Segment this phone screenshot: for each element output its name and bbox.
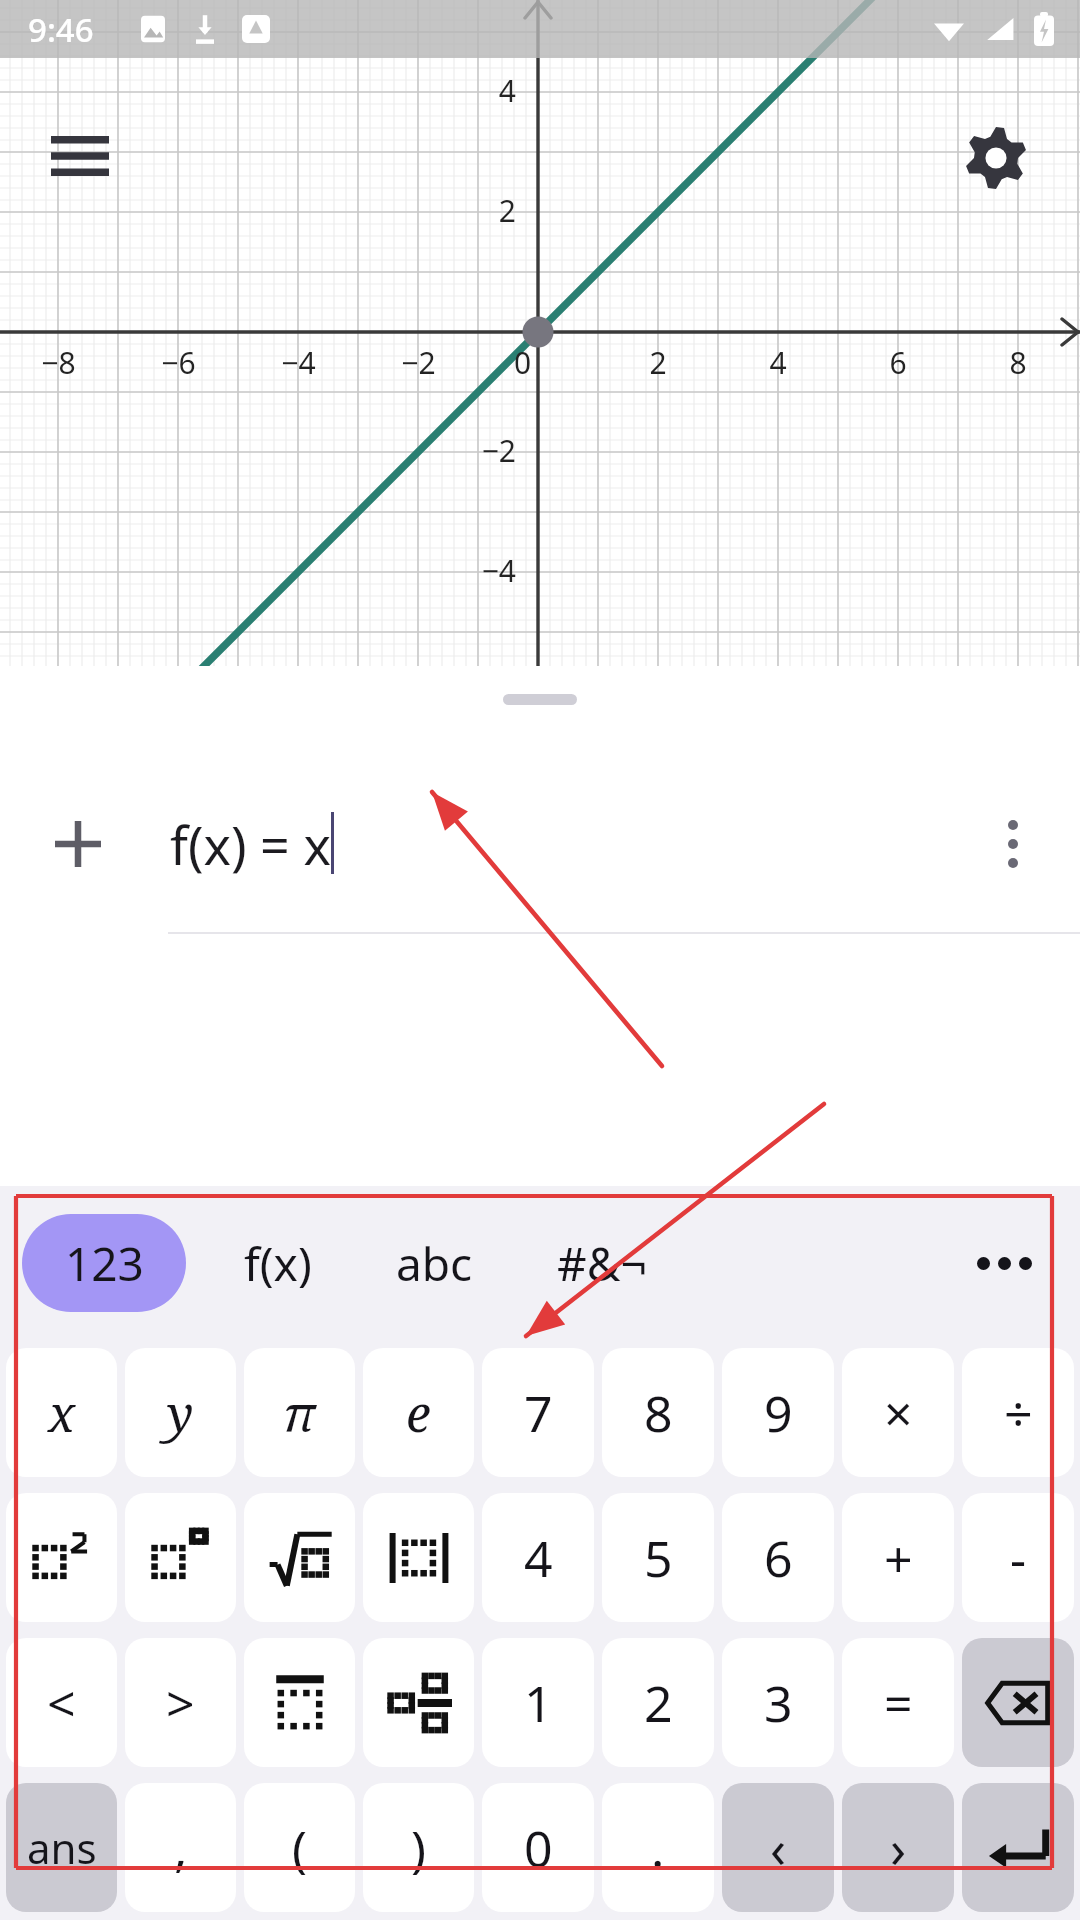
- staticText: ÷: [1004, 1379, 1033, 1447]
- staticText: 4: [769, 342, 787, 383]
- button[interactable]: 1: [482, 1638, 594, 1767]
- button[interactable]: 123: [22, 1214, 186, 1312]
- button[interactable]: #&¬: [516, 1214, 688, 1312]
- button[interactable]: 6: [722, 1493, 834, 1622]
- staticText: ›: [890, 1812, 907, 1883]
- staticText: π: [283, 1379, 316, 1447]
- button[interactable]: ×: [842, 1348, 954, 1477]
- staticText: 2: [498, 190, 516, 231]
- button[interactable]: f(x) = x: [170, 809, 334, 880]
- staticText: −8: [41, 342, 76, 383]
- staticText: abc: [396, 1232, 473, 1295]
- staticText: ): [411, 1814, 426, 1882]
- staticText: ×: [884, 1379, 913, 1447]
- staticText: 4: [498, 70, 516, 111]
- button[interactable]: f(x): [202, 1214, 354, 1312]
- staticText: +: [884, 1524, 913, 1592]
- staticText: −4: [481, 550, 516, 591]
- staticText: <: [47, 1669, 76, 1737]
- button[interactable]: [125, 1493, 236, 1622]
- staticText: 1: [524, 1669, 553, 1737]
- button[interactable]: More options: [968, 799, 1058, 889]
- staticText: ans: [27, 1819, 97, 1876]
- staticText: −6: [161, 342, 196, 383]
- button[interactable]: ÷: [962, 1348, 1074, 1477]
- button[interactable]: .: [602, 1783, 714, 1912]
- staticText: 8: [644, 1379, 673, 1447]
- button[interactable]: [363, 1493, 474, 1622]
- button[interactable]: 2: [602, 1638, 714, 1767]
- staticText: −2: [401, 342, 436, 383]
- button[interactable]: 8: [602, 1348, 714, 1477]
- button[interactable]: y: [125, 1348, 236, 1477]
- staticText: 3: [764, 1669, 793, 1737]
- staticText: x: [48, 1379, 76, 1447]
- button[interactable]: ans: [6, 1783, 117, 1912]
- staticText: 8: [1009, 342, 1027, 383]
- staticText: 2: [644, 1669, 673, 1737]
- button[interactable]: [6, 1493, 117, 1622]
- staticText: e: [406, 1379, 431, 1447]
- staticText: −4: [281, 342, 316, 383]
- staticText: f(x): [244, 1232, 312, 1295]
- staticText: 0: [514, 342, 532, 383]
- staticText: -: [1010, 1524, 1027, 1592]
- button[interactable]: Settings: [950, 112, 1042, 204]
- button[interactable]: ‹: [722, 1783, 834, 1912]
- staticText: 9: [764, 1379, 793, 1447]
- button[interactable]: More keyboard options: [956, 1215, 1052, 1311]
- staticText: 5: [644, 1524, 673, 1592]
- staticText: ‹: [770, 1812, 787, 1883]
- staticText: 4: [524, 1524, 553, 1592]
- button[interactable]: ›: [842, 1783, 954, 1912]
- button[interactable]: =: [842, 1638, 954, 1767]
- button[interactable]: e: [363, 1348, 474, 1477]
- button[interactable]: [363, 1638, 474, 1767]
- staticText: 6: [764, 1524, 793, 1592]
- staticText: −2: [481, 430, 516, 471]
- button[interactable]: π: [244, 1348, 355, 1477]
- button[interactable]: Menu: [40, 118, 120, 193]
- button[interactable]: >: [125, 1638, 236, 1767]
- staticText: y: [167, 1379, 194, 1447]
- button[interactable]: 5: [602, 1493, 714, 1622]
- button[interactable]: Add expression: [32, 798, 124, 890]
- button[interactable]: 0: [482, 1783, 594, 1912]
- staticText: 2: [649, 342, 667, 383]
- button[interactable]: +: [842, 1493, 954, 1622]
- staticText: #&¬: [557, 1232, 647, 1295]
- button[interactable]: abc: [354, 1214, 514, 1312]
- button[interactable]: x: [6, 1348, 117, 1477]
- staticText: ,: [174, 1814, 188, 1882]
- button[interactable]: 9: [722, 1348, 834, 1477]
- staticText: 7: [524, 1379, 553, 1447]
- button[interactable]: ,: [125, 1783, 236, 1912]
- staticText: 9:46: [28, 7, 94, 52]
- button[interactable]: Enter: [962, 1783, 1074, 1912]
- button[interactable]: (: [244, 1783, 355, 1912]
- staticText: .: [651, 1814, 665, 1882]
- button[interactable]: 3: [722, 1638, 834, 1767]
- button[interactable]: Backspace: [962, 1638, 1074, 1767]
- staticText: 6: [889, 342, 907, 383]
- button[interactable]: 7: [482, 1348, 594, 1477]
- staticText: >: [166, 1669, 195, 1737]
- staticText: f(x) = x: [170, 809, 331, 880]
- button[interactable]: 4: [482, 1493, 594, 1622]
- staticText: 123: [65, 1232, 144, 1295]
- staticText: =: [884, 1669, 913, 1737]
- button[interactable]: <: [6, 1638, 117, 1767]
- staticText: 0: [524, 1814, 553, 1882]
- button[interactable]: ): [363, 1783, 474, 1912]
- staticText: (: [292, 1814, 307, 1882]
- button[interactable]: [244, 1638, 355, 1767]
- button[interactable]: [244, 1493, 355, 1622]
- button[interactable]: -: [962, 1493, 1074, 1622]
